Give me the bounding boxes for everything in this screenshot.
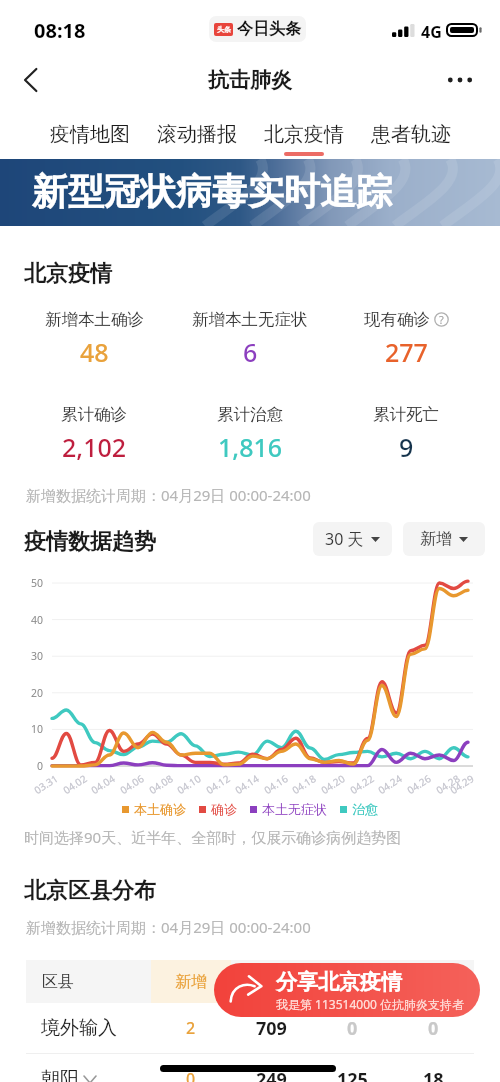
staticText: 分享北京疫情 [276,969,402,995]
staticText: 30 [31,649,44,663]
staticText: 04.12 [203,771,233,797]
staticText: 03.31 [31,771,61,797]
staticText: 04.18 [289,771,319,797]
staticText: 50 [31,576,44,590]
staticText: 04.26 [404,771,434,797]
staticText: 新增本土确诊 [45,309,144,330]
staticText: 累计死亡 [373,404,439,425]
staticText: 本土无症状 [262,801,327,817]
staticText: 0 [347,1016,358,1041]
staticText: 9 [399,430,414,464]
staticText: 4G [421,21,442,43]
staticText: 0 [428,1016,439,1041]
staticText: 累计 [256,972,288,992]
button[interactable]: 累计死亡 [328,404,484,464]
staticText: 境外输入 [41,1016,117,1040]
button[interactable]: 北京疫情 [250,105,357,160]
staticText: ? [439,312,444,327]
staticText: 04.14 [232,771,262,797]
staticText: 04.16 [261,771,291,797]
staticText: 40 [31,613,44,627]
button[interactable]: 新增本土无症状 [172,309,328,369]
staticText: 新增 [420,529,452,549]
staticText: 10 [31,722,44,736]
button[interactable]: 新增本土确诊 [16,309,172,369]
staticText: 我是第 113514000 位抗肺炎支持者 [276,996,465,1012]
button[interactable]: 累计治愈 [172,404,328,464]
staticText: 区县 [42,972,74,992]
staticText: 今日头条 [237,19,301,39]
staticText: 北京疫情 [24,260,112,288]
staticText: 709 [256,1016,287,1041]
staticText: 20 [31,686,44,700]
staticText: 04.08 [146,771,176,797]
staticText: 朝阳 [41,1067,79,1082]
staticText: 累计确诊 [61,404,127,425]
staticText: 0 [186,1068,196,1082]
staticText: 277 [385,335,428,369]
button[interactable]: 患者轨迹 [357,105,464,160]
staticText: 北京疫情 [264,122,344,147]
staticText: 04.20 [318,771,348,797]
staticText: 北京区县分布 [24,877,156,905]
staticText: 抗击肺炎 [208,67,292,93]
staticText: 现有确诊 [364,309,430,330]
staticText: 新增本土无症状 [192,309,308,330]
staticText: 患者轨迹 [371,122,451,147]
staticText: 新增数据统计周期：04月29日 00:00-24:00 [26,485,311,505]
staticText: 6 [243,335,258,369]
button[interactable]: 累计确诊 [16,404,172,464]
button[interactable]: Back [8,58,52,102]
staticText: 04.04 [88,771,118,797]
staticText: 04.22 [347,771,377,797]
staticText: 48 [80,335,109,369]
staticText: 04.02 [60,771,90,797]
staticText: 累计治愈 [217,404,283,425]
staticText: 时间选择90天、近半年、全部时，仅展示确诊病例趋势图 [24,827,402,847]
staticText: 新增 [175,972,207,992]
staticText: 04.10 [174,771,204,797]
staticText: 04.29 [447,771,477,797]
staticText: 疫情数据趋势 [24,528,156,556]
staticText: 18 [423,1067,444,1082]
staticText: 0 [37,759,44,773]
staticText: 2 [186,1017,196,1039]
staticText: 治愈 [337,972,369,992]
staticText: 滚动播报 [157,122,237,147]
button[interactable]: More options [438,58,482,102]
staticText: 新增数据统计周期：04月29日 00:00-24:00 [26,917,311,937]
button[interactable]: 境外输入 [26,1003,474,1053]
button[interactable]: 滚动播报 [143,105,250,160]
staticText: 本土确诊 [134,801,186,817]
staticText: 30 天 [325,528,364,550]
staticText: 04.06 [117,771,147,797]
staticText: 04.28 [433,771,463,797]
staticText: 确诊 [211,801,237,817]
staticText: 疫情地图 [50,122,130,147]
staticText: 2,102 [62,430,127,464]
staticText: 04.24 [375,771,405,797]
button[interactable]: 疫情地图 [36,105,143,160]
button[interactable]: 朝阳 [26,1054,474,1082]
button[interactable]: 30 天 [313,522,392,556]
staticText: 头条 [217,25,231,34]
staticText: 08:18 [34,17,86,44]
staticText: 新型冠状病毒实时追踪 [32,169,392,214]
staticText: 125 [337,1067,368,1082]
button[interactable]: 新增 [403,522,485,556]
staticText: 治愈 [352,801,378,817]
button[interactable]: 分享北京疫情 [214,963,480,1017]
staticText: 1,816 [218,430,283,464]
staticText: 249 [256,1067,287,1082]
button[interactable]: 现有确诊 [328,309,484,369]
